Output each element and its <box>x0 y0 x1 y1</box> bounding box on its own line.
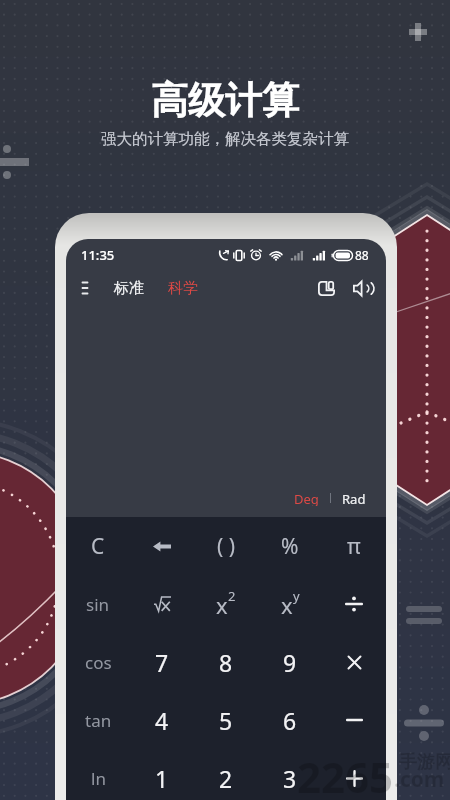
staticText: 9 <box>283 647 297 678</box>
staticText: 科学 <box>168 279 198 298</box>
button[interactable]: 6 <box>258 691 322 749</box>
staticText: 5 <box>219 705 233 736</box>
button[interactable]: Deg <box>283 488 330 508</box>
staticText: 6 <box>283 705 297 736</box>
button[interactable]: 1 <box>130 749 194 800</box>
staticText: 8 <box>219 647 233 678</box>
button[interactable]: ( ) <box>194 517 258 575</box>
button[interactable]: cos <box>66 633 130 691</box>
staticText: Rad <box>342 490 366 506</box>
staticText: 3 <box>283 763 297 794</box>
staticText: y <box>293 587 300 605</box>
button[interactable]: Menu <box>73 276 97 300</box>
staticText: 11:35 <box>81 246 115 264</box>
staticText: 7 <box>155 647 169 678</box>
staticText: .com <box>394 765 445 794</box>
button[interactable]: 3 <box>258 749 322 800</box>
button[interactable]: x2 <box>194 575 258 633</box>
button[interactable]: 7 <box>130 633 194 691</box>
button[interactable]: C <box>66 517 130 575</box>
button[interactable]: 标准 <box>110 275 148 302</box>
button[interactable]: 8 <box>194 633 258 691</box>
staticText: 高级计算 <box>151 77 299 124</box>
staticText: π <box>347 532 361 561</box>
button[interactable]: Backspace <box>130 517 194 575</box>
staticText: 手游网 <box>399 751 450 774</box>
staticText: % <box>281 532 299 561</box>
button[interactable]: Rad <box>331 488 377 508</box>
button[interactable]: Split screen <box>311 273 341 303</box>
button[interactable]: 科学 <box>164 275 202 302</box>
staticText: ( ) <box>217 532 236 561</box>
staticText: 1 <box>155 763 169 794</box>
button[interactable]: 4 <box>130 691 194 749</box>
button[interactable]: Minus <box>322 691 386 749</box>
staticText: 88 <box>355 247 369 263</box>
staticText: tan <box>85 709 112 732</box>
staticText: C <box>91 532 105 561</box>
staticText: x <box>216 590 228 620</box>
button[interactable]: % <box>258 517 322 575</box>
button[interactable]: tan <box>66 691 130 749</box>
staticText: sin <box>86 593 110 616</box>
button[interactable]: Sound <box>346 273 376 303</box>
staticText: ln <box>91 767 106 790</box>
button[interactable]: 5 <box>194 691 258 749</box>
button[interactable]: Plus <box>322 749 386 800</box>
button[interactable]: π <box>322 517 386 575</box>
staticText: cos <box>85 651 112 674</box>
staticText: 2 <box>228 587 236 605</box>
staticText: 2265 <box>297 748 394 800</box>
button[interactable]: xy <box>258 575 322 633</box>
staticText: 强大的计算功能，解决各类复杂计算 <box>101 129 349 149</box>
button[interactable]: 9 <box>258 633 322 691</box>
button[interactable]: 2 <box>194 749 258 800</box>
button[interactable]: ln <box>66 749 130 800</box>
staticText: x <box>281 590 293 620</box>
staticText: 2 <box>219 763 233 794</box>
button[interactable]: sin <box>66 575 130 633</box>
staticText: 标准 <box>114 279 144 298</box>
button[interactable]: Square root <box>130 575 194 633</box>
staticText: 4 <box>155 705 169 736</box>
staticText: Deg <box>294 490 319 506</box>
button[interactable]: Multiply <box>322 633 386 691</box>
button[interactable]: Divide <box>322 575 386 633</box>
